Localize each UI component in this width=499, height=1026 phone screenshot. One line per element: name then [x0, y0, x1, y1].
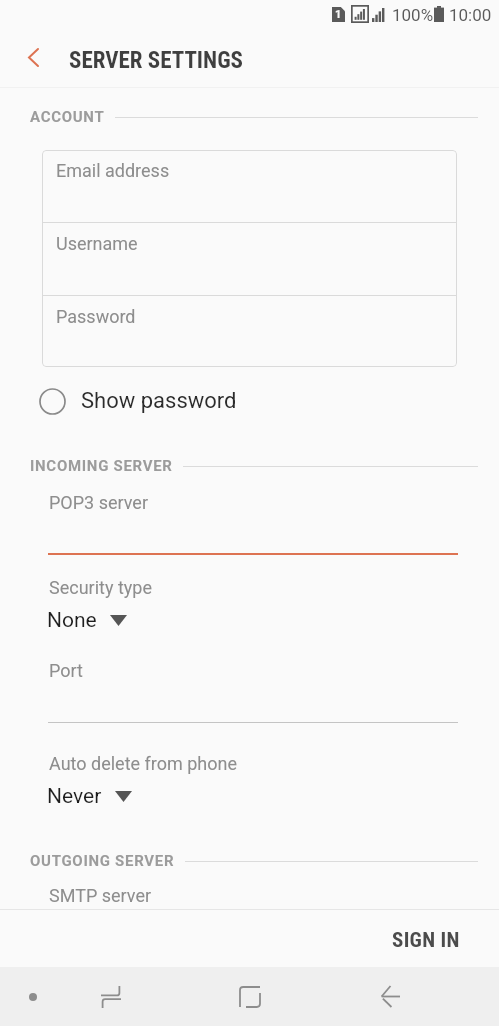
button[interactable]: Navigate up	[0, 33, 66, 96]
staticText: ACCOUNT	[30, 108, 105, 126]
button[interactable]: Back	[350, 967, 430, 1026]
staticText: POP3 server	[49, 492, 149, 513]
button[interactable]: Email address	[42, 150, 457, 222]
button[interactable]: Username	[42, 223, 457, 295]
staticText: SMTP server	[49, 885, 152, 906]
button[interactable]: None	[0, 608, 499, 633]
staticText: None	[47, 608, 97, 633]
staticText: SERVER SETTINGS	[69, 47, 244, 74]
button[interactable]: Password	[42, 296, 457, 367]
staticText: 1	[335, 8, 342, 21]
staticText: SIGN IN	[392, 928, 460, 953]
staticText: Password	[56, 306, 136, 327]
staticText: Email address	[56, 160, 170, 181]
button[interactable]: Home	[210, 967, 290, 1026]
button[interactable]: SIGN IN	[367, 912, 485, 969]
staticText: OUTGOING SERVER	[30, 852, 175, 870]
staticText: INCOMING SERVER	[30, 457, 173, 475]
button[interactable]: Recent apps	[70, 967, 152, 1026]
staticText: Auto delete from phone	[49, 753, 237, 774]
button[interactable]: Show password	[39, 384, 237, 418]
staticText: Never	[47, 784, 102, 809]
button[interactable]: Hide keyboard	[5, 967, 61, 1026]
staticText: Port	[49, 660, 83, 681]
staticText: Security type	[49, 577, 152, 598]
staticText: 100%	[392, 5, 434, 25]
button[interactable]: Never	[0, 784, 499, 809]
staticText: 10:00	[449, 5, 492, 25]
staticText: Username	[56, 233, 138, 254]
staticText: Show password	[81, 388, 237, 414]
